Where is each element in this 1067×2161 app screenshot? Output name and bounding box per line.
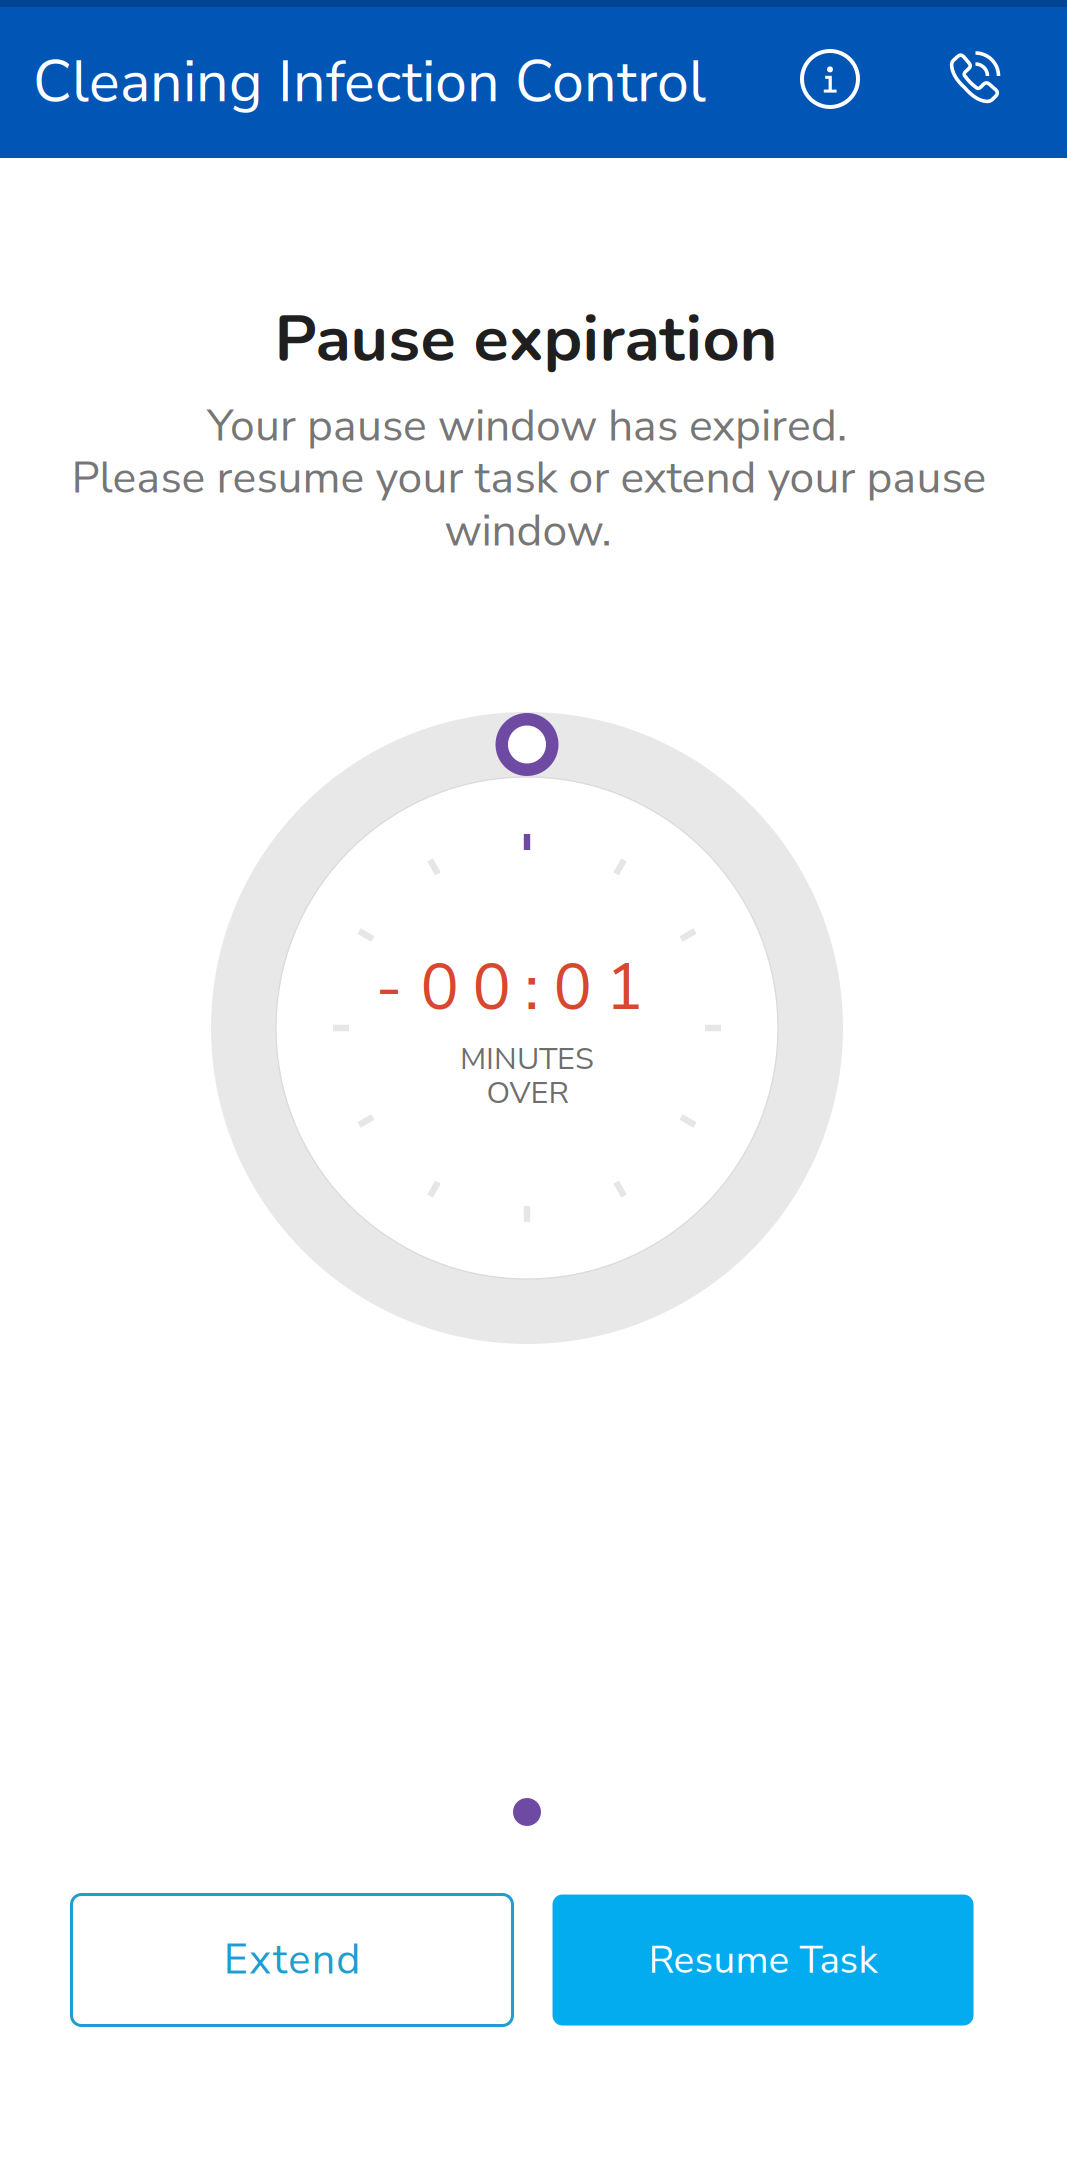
staticText: Your pause window has expired. xyxy=(207,396,847,456)
button[interactable]: Call xyxy=(919,24,1029,134)
staticText: window. xyxy=(444,501,611,561)
staticText: Extend xyxy=(224,1932,360,1988)
staticText: OVER xyxy=(486,1072,569,1114)
staticText: Please resume your task or extend your p… xyxy=(71,448,986,508)
staticText: 00:01 xyxy=(420,944,643,1032)
staticText: Cleaning Infection Control xyxy=(33,43,706,122)
button[interactable]: Cleaning Infection Control xyxy=(33,7,773,158)
button[interactable]: Information xyxy=(775,24,885,134)
staticText: MINUTES xyxy=(460,1038,594,1080)
staticText: Resume Task xyxy=(648,1934,877,1986)
button[interactable]: Resume Task xyxy=(552,1894,973,2025)
staticText: Pause expiration xyxy=(274,295,777,383)
button[interactable]: Extend xyxy=(71,1894,512,2025)
staticText: - xyxy=(375,944,402,1032)
